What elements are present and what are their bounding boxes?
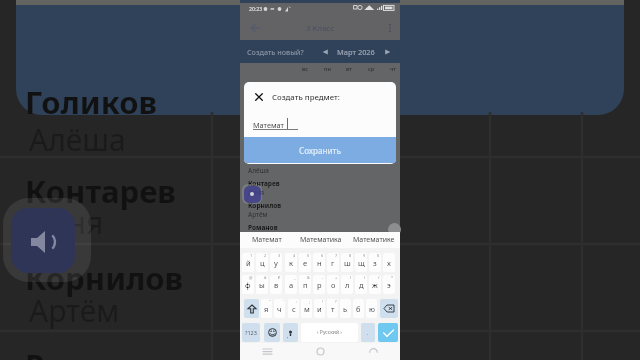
button[interactable]: ч <box>274 299 285 318</box>
button[interactable]: Создать новый? <box>247 47 304 57</box>
button[interactable]: ы <box>256 275 268 294</box>
button[interactable]: . <box>361 323 375 342</box>
button[interactable]: е <box>299 253 311 272</box>
button[interactable]: д <box>355 275 367 294</box>
button[interactable]: Back <box>248 21 262 35</box>
staticText: 5 <box>307 253 310 258</box>
staticText: ю <box>369 304 375 314</box>
button[interactable]: Корнилов <box>248 201 282 219</box>
button[interactable]: Enter <box>378 323 398 342</box>
button[interactable]: Сохранить <box>244 137 396 163</box>
button[interactable]: к <box>285 253 297 272</box>
staticText: Контарев <box>248 179 280 188</box>
button[interactable]: Add <box>388 223 401 236</box>
staticText: Корнилов <box>25 257 184 299</box>
staticText: ж <box>372 280 378 290</box>
staticText: : <box>296 299 298 304</box>
button[interactable]: Home <box>294 343 347 360</box>
staticText: а <box>289 280 294 290</box>
staticText: Математика <box>300 235 342 245</box>
staticText: в <box>274 280 279 290</box>
staticText: 2 <box>264 253 267 258</box>
button[interactable]: и <box>314 299 325 318</box>
staticText: ?123 <box>245 329 257 336</box>
staticText: д <box>359 280 364 290</box>
button[interactable]: щ <box>355 253 367 272</box>
staticText: пн <box>324 65 331 72</box>
button[interactable]: Previous month <box>321 48 329 56</box>
staticText: л <box>345 280 350 290</box>
staticText: 3 <box>278 253 281 258</box>
staticText: ( <box>350 275 352 280</box>
staticText: ч <box>277 304 282 314</box>
staticText: _ <box>294 275 296 280</box>
button[interactable]: , <box>283 323 298 342</box>
button[interactable]: Next month <box>384 48 392 56</box>
staticText: , <box>287 332 289 340</box>
button[interactable]: Back <box>347 343 400 360</box>
button[interactable]: ь <box>340 299 351 318</box>
button[interactable]: г <box>327 253 339 272</box>
button[interactable]: х <box>383 253 395 272</box>
button[interactable]: Математ <box>240 232 294 248</box>
button[interactable]: Романов <box>248 223 278 241</box>
button[interactable]: о <box>327 275 339 294</box>
button[interactable]: л <box>341 275 353 294</box>
button[interactable]: а <box>285 275 297 294</box>
staticText: # <box>264 275 267 280</box>
button[interactable]: н <box>313 253 325 272</box>
staticText: ц <box>260 258 265 268</box>
staticText: вт <box>346 65 352 72</box>
staticText: . <box>367 329 369 337</box>
staticText: вс <box>302 65 308 72</box>
staticText: Алёша <box>248 166 269 175</box>
button[interactable]: й <box>242 253 254 272</box>
button[interactable]: Математике <box>347 232 400 248</box>
button[interactable]: я <box>261 299 272 318</box>
button[interactable]: з <box>369 253 381 272</box>
button[interactable]: ц <box>256 253 268 272</box>
button[interactable]: п <box>299 275 311 294</box>
button[interactable]: ш <box>341 253 353 272</box>
button[interactable]: ж <box>369 275 381 294</box>
button[interactable]: More options <box>385 23 395 33</box>
button[interactable]: Recents <box>240 343 294 360</box>
staticText: ‹ Русский › <box>317 329 342 336</box>
button[interactable]: ‹ Русский › <box>301 323 358 342</box>
button[interactable]: ю <box>366 299 377 318</box>
staticText: э <box>387 280 391 290</box>
staticText: - <box>322 275 324 280</box>
button[interactable]: Emoji <box>264 323 280 342</box>
staticText: ; <box>309 299 311 304</box>
staticText: " <box>269 299 271 304</box>
staticText: ь <box>343 304 348 314</box>
button[interactable]: с <box>288 299 299 318</box>
staticText: е <box>303 258 308 268</box>
button[interactable]: в <box>270 275 282 294</box>
button[interactable]: Контарев <box>248 179 280 197</box>
staticText: Чеплаков <box>248 157 281 166</box>
staticText: Создать предмет: <box>272 92 340 103</box>
button[interactable]: р <box>313 275 325 294</box>
staticText: & <box>307 275 310 280</box>
button[interactable]: т <box>327 299 338 318</box>
staticText: о <box>331 280 336 290</box>
button[interactable]: ?123 <box>242 323 260 342</box>
staticText: н <box>317 258 322 268</box>
button[interactable]: Backspace <box>380 299 398 318</box>
button[interactable]: ф <box>242 275 254 294</box>
button[interactable]: Математика <box>294 232 347 248</box>
button[interactable]: э <box>383 275 395 294</box>
button[interactable]: б <box>353 299 364 318</box>
button[interactable]: Чеплаков <box>248 157 281 175</box>
staticText: Голиков <box>25 81 157 123</box>
staticText: 6 <box>321 253 324 258</box>
staticText: * <box>391 275 394 280</box>
staticText: м <box>304 304 310 314</box>
staticText: Романов <box>25 344 166 360</box>
button[interactable]: Close <box>255 93 263 101</box>
staticText: ) <box>364 275 366 280</box>
button[interactable]: м <box>301 299 312 318</box>
button[interactable]: у <box>270 253 282 272</box>
button[interactable]: Shift <box>244 299 259 318</box>
